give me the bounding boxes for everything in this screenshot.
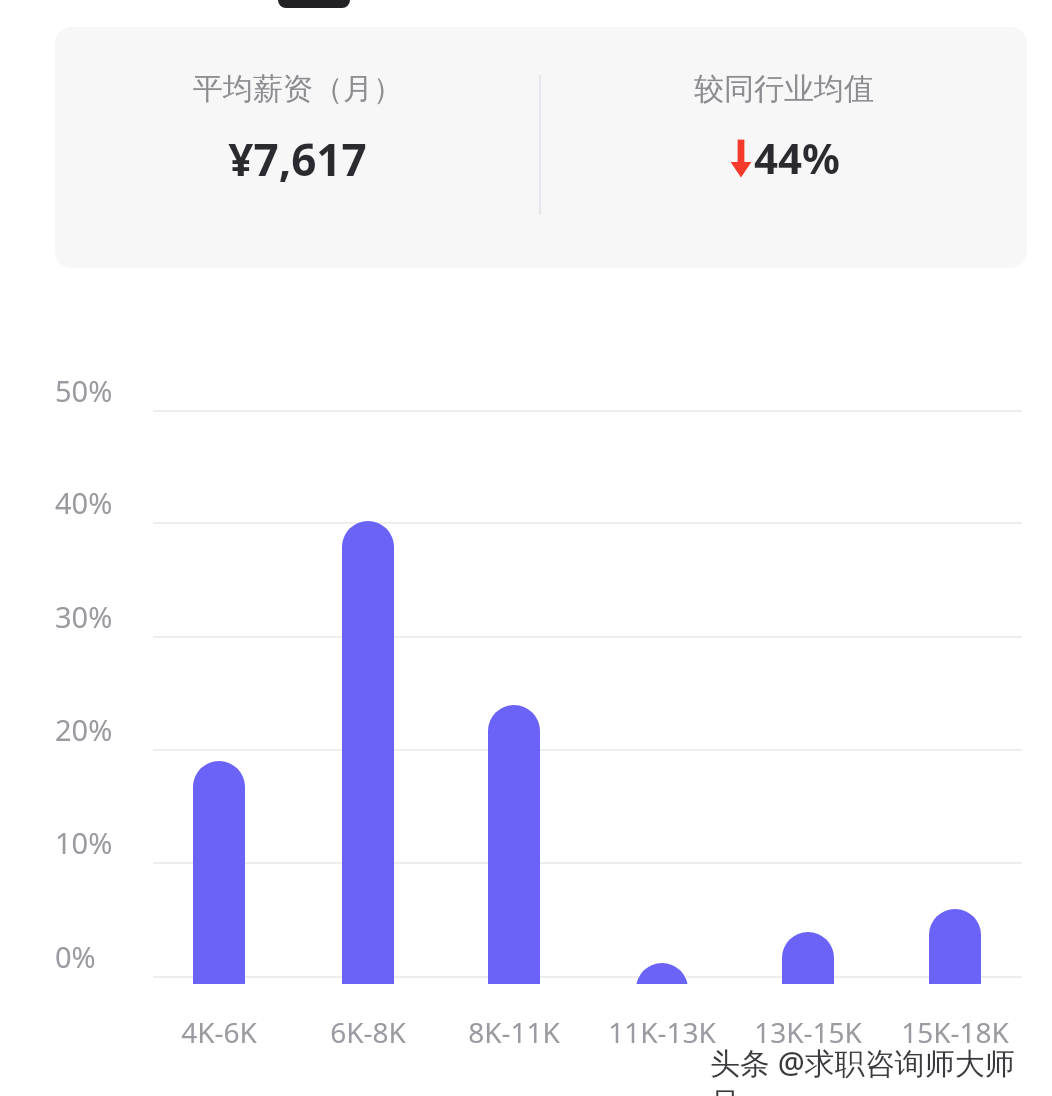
staticText: 4K-6K	[181, 1013, 257, 1051]
staticText: 头条 @求职咨询师大师兄	[712, 1044, 1042, 1096]
staticText: 44%	[754, 129, 840, 186]
staticText: 较同行业均值	[694, 70, 874, 108]
staticText: 15K-18K	[901, 1013, 1009, 1051]
staticText: 头条 @求职咨询师大师兄	[710, 1042, 1040, 1096]
staticText: 平均薪资（月）	[193, 70, 403, 108]
staticText: 8K-11K	[468, 1013, 560, 1051]
staticText: 11K-13K	[608, 1013, 716, 1051]
button[interactable]: 8K-11K	[429, 1013, 599, 1051]
button[interactable]: 6K-8K	[283, 1013, 453, 1051]
staticText: 头条 @求职咨询师大师兄	[710, 1040, 1040, 1096]
staticText: 13K-15K	[754, 1013, 862, 1051]
staticText: 6K-8K	[330, 1013, 406, 1051]
button[interactable]: 平均薪资（月）	[55, 27, 1027, 268]
staticText: 10%	[55, 823, 113, 862]
staticText: 头条 @求职咨询师大师兄	[708, 1044, 1038, 1096]
staticText: 0%	[55, 937, 96, 976]
staticText: 头条 @求职咨询师大师兄	[708, 1040, 1038, 1096]
button[interactable]	[278, 0, 350, 8]
staticText: ¥7,617	[228, 129, 367, 189]
staticText: 50%	[55, 371, 113, 410]
button[interactable]: 15K-18K	[870, 1013, 1040, 1051]
button[interactable]: 11K-13K	[577, 1013, 747, 1051]
staticText: 40%	[55, 483, 113, 522]
other: Down	[728, 138, 754, 178]
staticText: 30%	[55, 597, 113, 636]
staticText: 头条 @求职咨询师大师兄	[708, 1042, 1038, 1096]
button[interactable]: 4K-6K	[134, 1013, 304, 1051]
staticText: 20%	[55, 710, 113, 749]
staticText: 头条 @求职咨询师大师兄	[710, 1044, 1040, 1096]
staticText: 头条 @求职咨询师大师兄	[712, 1040, 1042, 1096]
button[interactable]: 13K-15K	[723, 1013, 893, 1051]
staticText: 头条 @求职咨询师大师兄	[712, 1042, 1042, 1096]
